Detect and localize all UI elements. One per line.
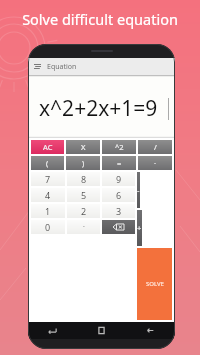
button[interactable]: · xyxy=(67,220,100,234)
button[interactable]: ) xyxy=(66,156,100,170)
staticText: 9 xyxy=(116,173,122,185)
staticText: 8 xyxy=(81,173,87,185)
staticText: + xyxy=(137,223,142,233)
button[interactable]: 5 xyxy=(67,188,100,202)
staticText: 5 xyxy=(81,189,87,201)
button[interactable]: 7 xyxy=(31,172,65,186)
staticText: 2 xyxy=(81,205,87,217)
button[interactable]: 6 xyxy=(102,188,135,202)
button[interactable]: SOLVE xyxy=(137,248,172,320)
button[interactable]: 1 xyxy=(31,204,65,218)
staticText: X xyxy=(81,142,86,152)
staticText: SOLVE xyxy=(146,280,164,288)
staticText: x^2+2x+1=9 xyxy=(39,94,158,123)
button[interactable]: 0 xyxy=(31,220,65,234)
button[interactable]: ^2 xyxy=(102,140,136,154)
staticText: 0 xyxy=(45,221,51,233)
staticText: AC xyxy=(43,142,53,152)
button[interactable]: X xyxy=(66,140,100,154)
staticText: ) xyxy=(82,158,85,168)
button[interactable]: Backspace xyxy=(102,220,135,234)
staticText: · xyxy=(83,222,85,232)
staticText: / xyxy=(154,142,157,152)
button[interactable]: ( xyxy=(31,156,64,170)
button[interactable]: AC xyxy=(31,140,64,154)
button[interactable]: / xyxy=(138,140,172,154)
staticText: ^2 xyxy=(115,142,124,152)
button[interactable]: 2 xyxy=(67,204,100,218)
button[interactable]: Recents xyxy=(28,322,77,339)
staticText: 7 xyxy=(45,173,51,185)
staticText: - xyxy=(137,185,140,195)
button[interactable]: - xyxy=(137,172,140,208)
staticText: · xyxy=(154,158,157,168)
staticText: Equation xyxy=(47,62,77,72)
staticText: Solve difficult equation xyxy=(22,9,178,29)
button[interactable]: Menu xyxy=(33,62,42,71)
button[interactable]: Home xyxy=(77,322,126,339)
button[interactable]: + xyxy=(137,210,142,246)
button[interactable]: 9 xyxy=(102,172,135,186)
button[interactable]: Back xyxy=(126,322,175,339)
button[interactable]: 3 xyxy=(102,204,135,218)
button[interactable]: Menu xyxy=(28,58,175,75)
button[interactable]: · xyxy=(138,156,172,170)
staticText: ( xyxy=(46,158,49,168)
staticText: 1 xyxy=(45,205,51,217)
button[interactable]: 8 xyxy=(67,172,100,186)
staticText: = xyxy=(117,158,122,168)
staticText: 4 xyxy=(45,189,51,201)
button[interactable]: 4 xyxy=(31,188,65,202)
staticText: 6 xyxy=(116,189,122,201)
staticText: 3 xyxy=(116,205,122,217)
button[interactable]: x^2+2x+1=9 xyxy=(28,75,175,138)
button[interactable]: = xyxy=(102,156,136,170)
